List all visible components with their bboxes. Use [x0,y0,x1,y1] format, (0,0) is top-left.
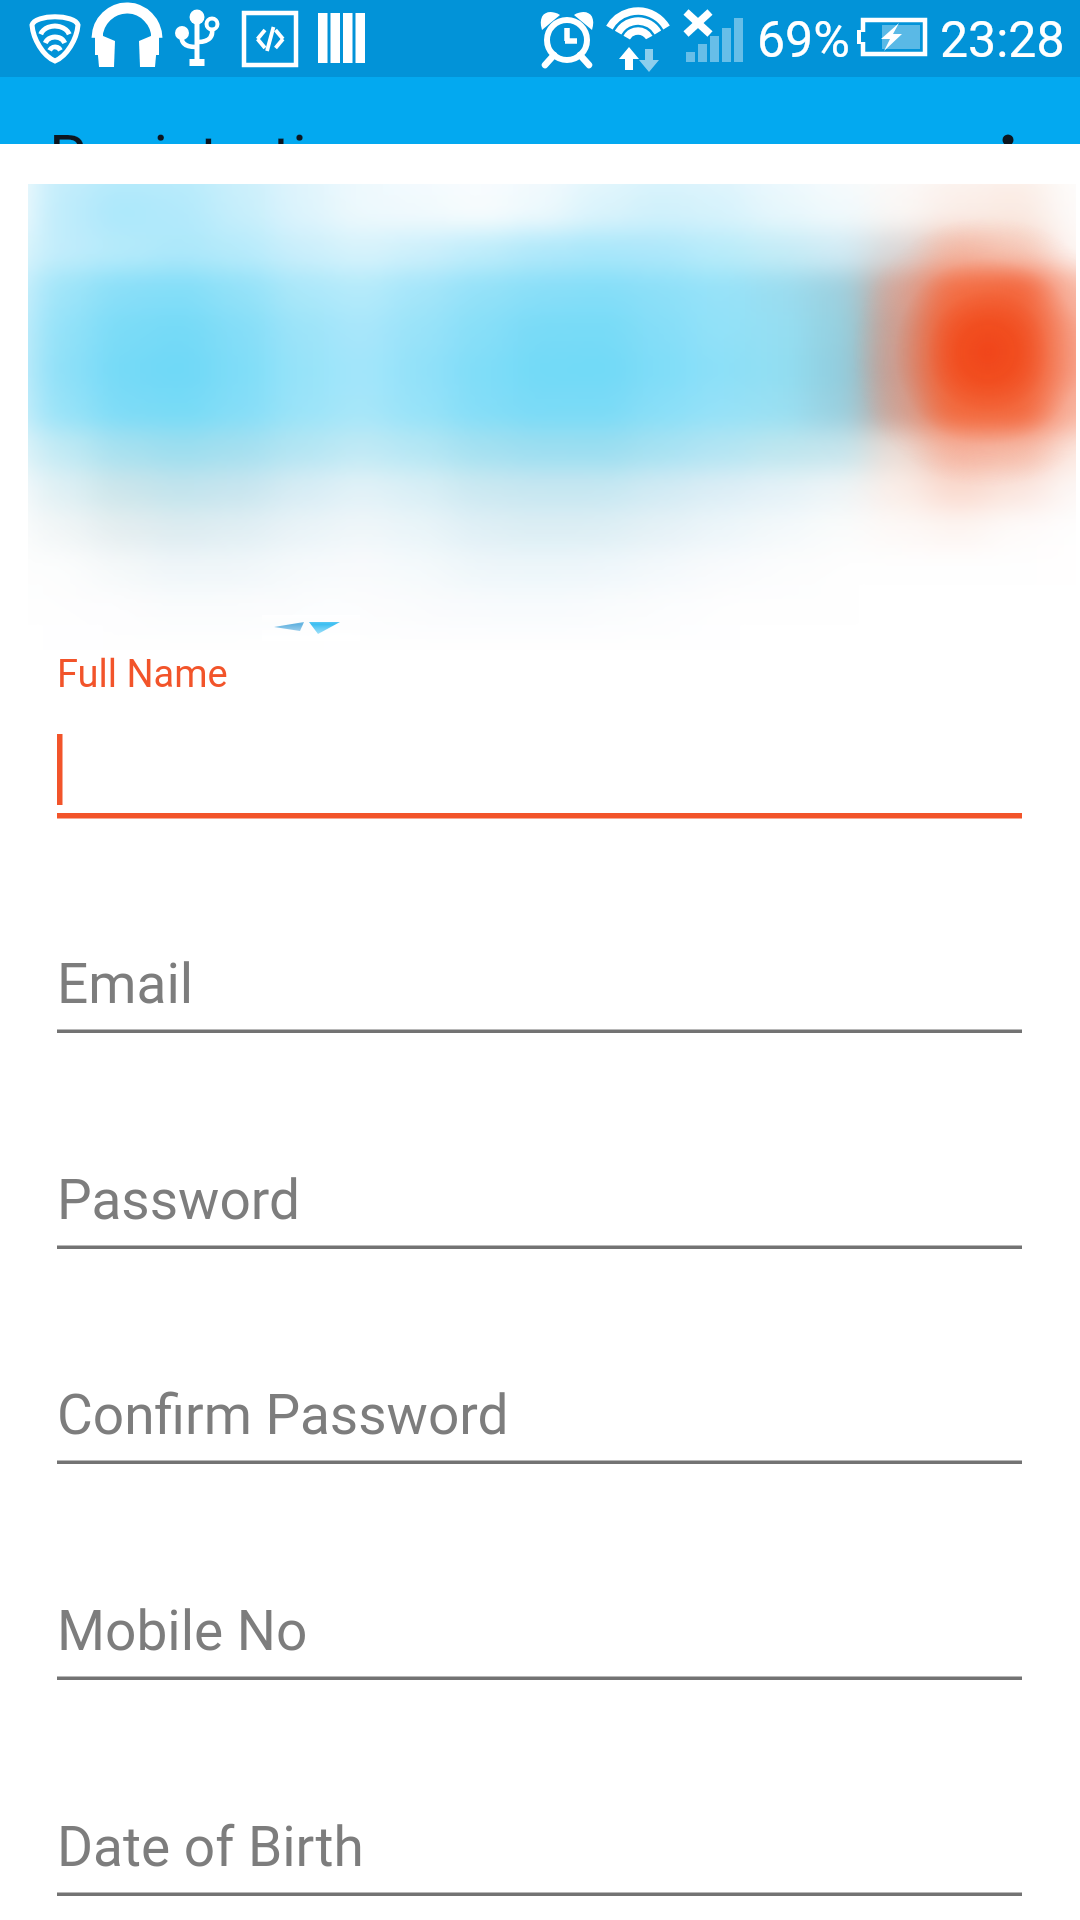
staticText: Full Name [57,652,228,697]
button[interactable]: Full Name [57,652,1022,822]
staticText: 69% [757,11,850,70]
staticText: Date of Birth [57,1815,364,1879]
button[interactable]: Confirm Password [57,1383,1022,1464]
staticText: 23:28 [940,11,1065,70]
button[interactable]: Date of Birth [57,1815,1022,1896]
staticText: Confirm Password [57,1383,509,1447]
button[interactable]: Email [57,952,1022,1033]
staticText: Mobile No [57,1599,308,1663]
staticText: Registration [49,122,376,144]
button[interactable]: More options [976,108,1040,144]
staticText: Email [57,952,194,1016]
staticText: Password [57,1168,300,1232]
button[interactable]: Password [57,1168,1022,1249]
button[interactable]: Mobile No [57,1599,1022,1680]
